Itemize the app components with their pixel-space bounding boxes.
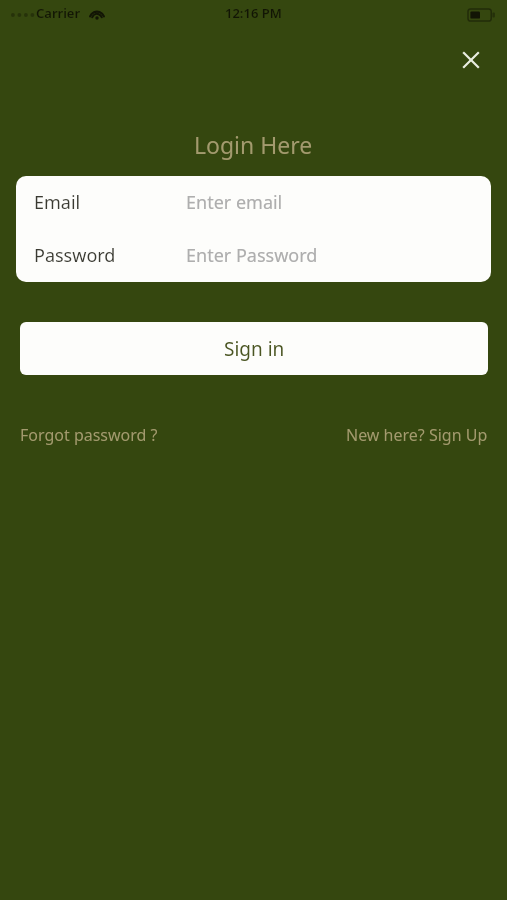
staticText: Enter email xyxy=(186,190,283,215)
button[interactable]: New here? Sign Up xyxy=(322,420,494,450)
button[interactable]: Email xyxy=(16,176,491,229)
staticText: Forgot password ? xyxy=(20,424,158,446)
staticText: 12:16 PM xyxy=(225,4,282,22)
staticText: Password xyxy=(34,243,116,268)
staticText: Carrier xyxy=(36,4,81,22)
button[interactable]: Sign in xyxy=(20,322,488,375)
staticText: Login Here xyxy=(194,129,313,160)
staticText: Enter Password xyxy=(186,243,318,268)
button[interactable]: Close xyxy=(449,38,493,82)
staticText: Email xyxy=(34,190,81,215)
staticText: Sign in xyxy=(224,336,285,362)
staticText: New here? Sign Up xyxy=(346,424,488,446)
button[interactable]: Forgot password ? xyxy=(14,420,164,450)
button[interactable]: Password xyxy=(16,229,491,282)
